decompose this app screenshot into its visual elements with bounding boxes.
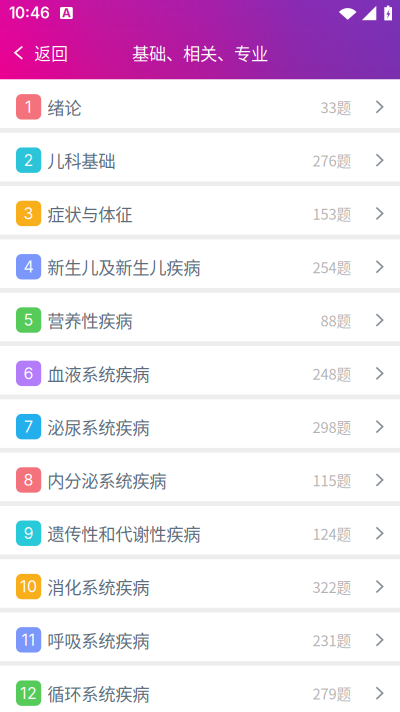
staticText: 新生儿及新生儿疾病 [47,254,200,279]
button[interactable]: 9 [0,506,400,559]
staticText: 322题 [312,576,351,597]
staticText: 返回 [34,41,68,65]
button[interactable]: 2 [0,133,400,186]
staticText: 33题 [320,96,351,117]
staticText: 248题 [312,363,351,384]
staticText: 11 [22,630,36,650]
button[interactable]: 7 [0,399,400,453]
staticText: 呼吸系统疾病 [47,627,149,652]
staticText: 231题 [312,629,351,650]
button[interactable]: 8 [0,453,400,506]
staticText: 124题 [312,523,351,544]
staticText: 153题 [312,203,351,224]
staticText: 1 [25,97,32,117]
staticText: 5 [24,310,34,330]
button[interactable]: 返回 [0,26,78,79]
staticText: 内分泌系统疾病 [47,467,166,492]
staticText: 254题 [312,256,351,277]
button[interactable]: 1 [0,79,400,133]
staticText: 3 [24,204,34,223]
staticText: 276题 [312,149,351,171]
staticText: 6 [24,364,34,383]
staticText: 血液系统疾病 [47,361,149,386]
button[interactable]: 4 [0,239,400,293]
staticText: 10:46 [9,4,50,22]
button[interactable]: 3 [0,186,400,239]
staticText: 消化系统疾病 [47,574,149,599]
staticText: 88题 [320,309,351,331]
staticText: 基础、相关、专业 [132,40,268,65]
staticText: 遗传性和代谢性疾病 [47,521,200,546]
staticText: 12 [20,683,37,703]
staticText: A [62,6,71,20]
staticText: 2 [24,150,34,170]
staticText: 营养性疾病 [47,307,132,333]
button[interactable]: 6 [0,346,400,399]
staticText: 298题 [312,416,351,437]
staticText: 7 [24,417,33,436]
button[interactable]: 12 [0,666,400,712]
staticText: 115题 [312,469,351,490]
staticText: 绪论 [47,94,81,119]
staticText: 泌尿系统疾病 [47,414,149,439]
staticText: 症状与体征 [47,201,132,226]
button[interactable]: 11 [0,612,400,666]
staticText: 儿科基础 [47,148,115,173]
staticText: 10 [20,577,37,596]
staticText: 279题 [312,682,351,704]
button[interactable]: 10 [0,559,400,612]
staticText: 循环系统疾病 [47,681,149,706]
staticText: 4 [24,257,34,276]
staticText: 8 [24,470,34,490]
staticText: 9 [24,524,34,543]
button[interactable]: 5 [0,293,400,346]
